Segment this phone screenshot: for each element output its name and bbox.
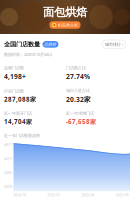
staticText: 全国门店数量 (4, 40, 40, 48)
staticText: -67,658家 (66, 118, 96, 126)
staticText: AI品类分析 (58, 22, 78, 28)
button[interactable]: 城市排行 (102, 40, 126, 49)
staticText: 2025-08 (115, 192, 128, 197)
staticText: 近一年门店数量趋势 (4, 133, 40, 138)
staticText: 27.74% (66, 72, 90, 81)
staticText: 2025-01 (47, 192, 60, 197)
staticText: 4657 (4, 156, 12, 161)
staticText: 20.32家 (66, 95, 91, 104)
staticText: 行业门店数 (4, 88, 24, 94)
staticText: 14,704家 (4, 118, 32, 126)
staticText: 面包烘焙 (43, 5, 87, 19)
button[interactable]: 品牌榜 (42, 41, 58, 48)
staticText: 4,198+ (4, 72, 26, 81)
staticText: 近一年净增门店 (66, 111, 94, 116)
staticText: 数据时间：2025年10月24日 (4, 52, 52, 57)
button[interactable]: AI品类分析 (49, 21, 80, 29)
staticText: 287,088家 (4, 95, 36, 103)
staticText: 2024-10 (13, 192, 26, 197)
staticText: › (122, 42, 123, 47)
staticText: 近一年新开门店 (4, 111, 32, 116)
staticText: 城市排行 (105, 42, 121, 47)
staticText: 品牌门店数 (4, 65, 24, 70)
staticText: 品牌榜 (44, 42, 56, 47)
staticText: 4483 (4, 170, 12, 175)
staticText: 2025-04 (81, 192, 94, 197)
staticText: 4309 (4, 184, 12, 189)
staticText: 城市入驻占比 (66, 88, 90, 93)
staticText: 门店数占比 (66, 65, 86, 70)
staticText: 4831 (4, 142, 12, 147)
